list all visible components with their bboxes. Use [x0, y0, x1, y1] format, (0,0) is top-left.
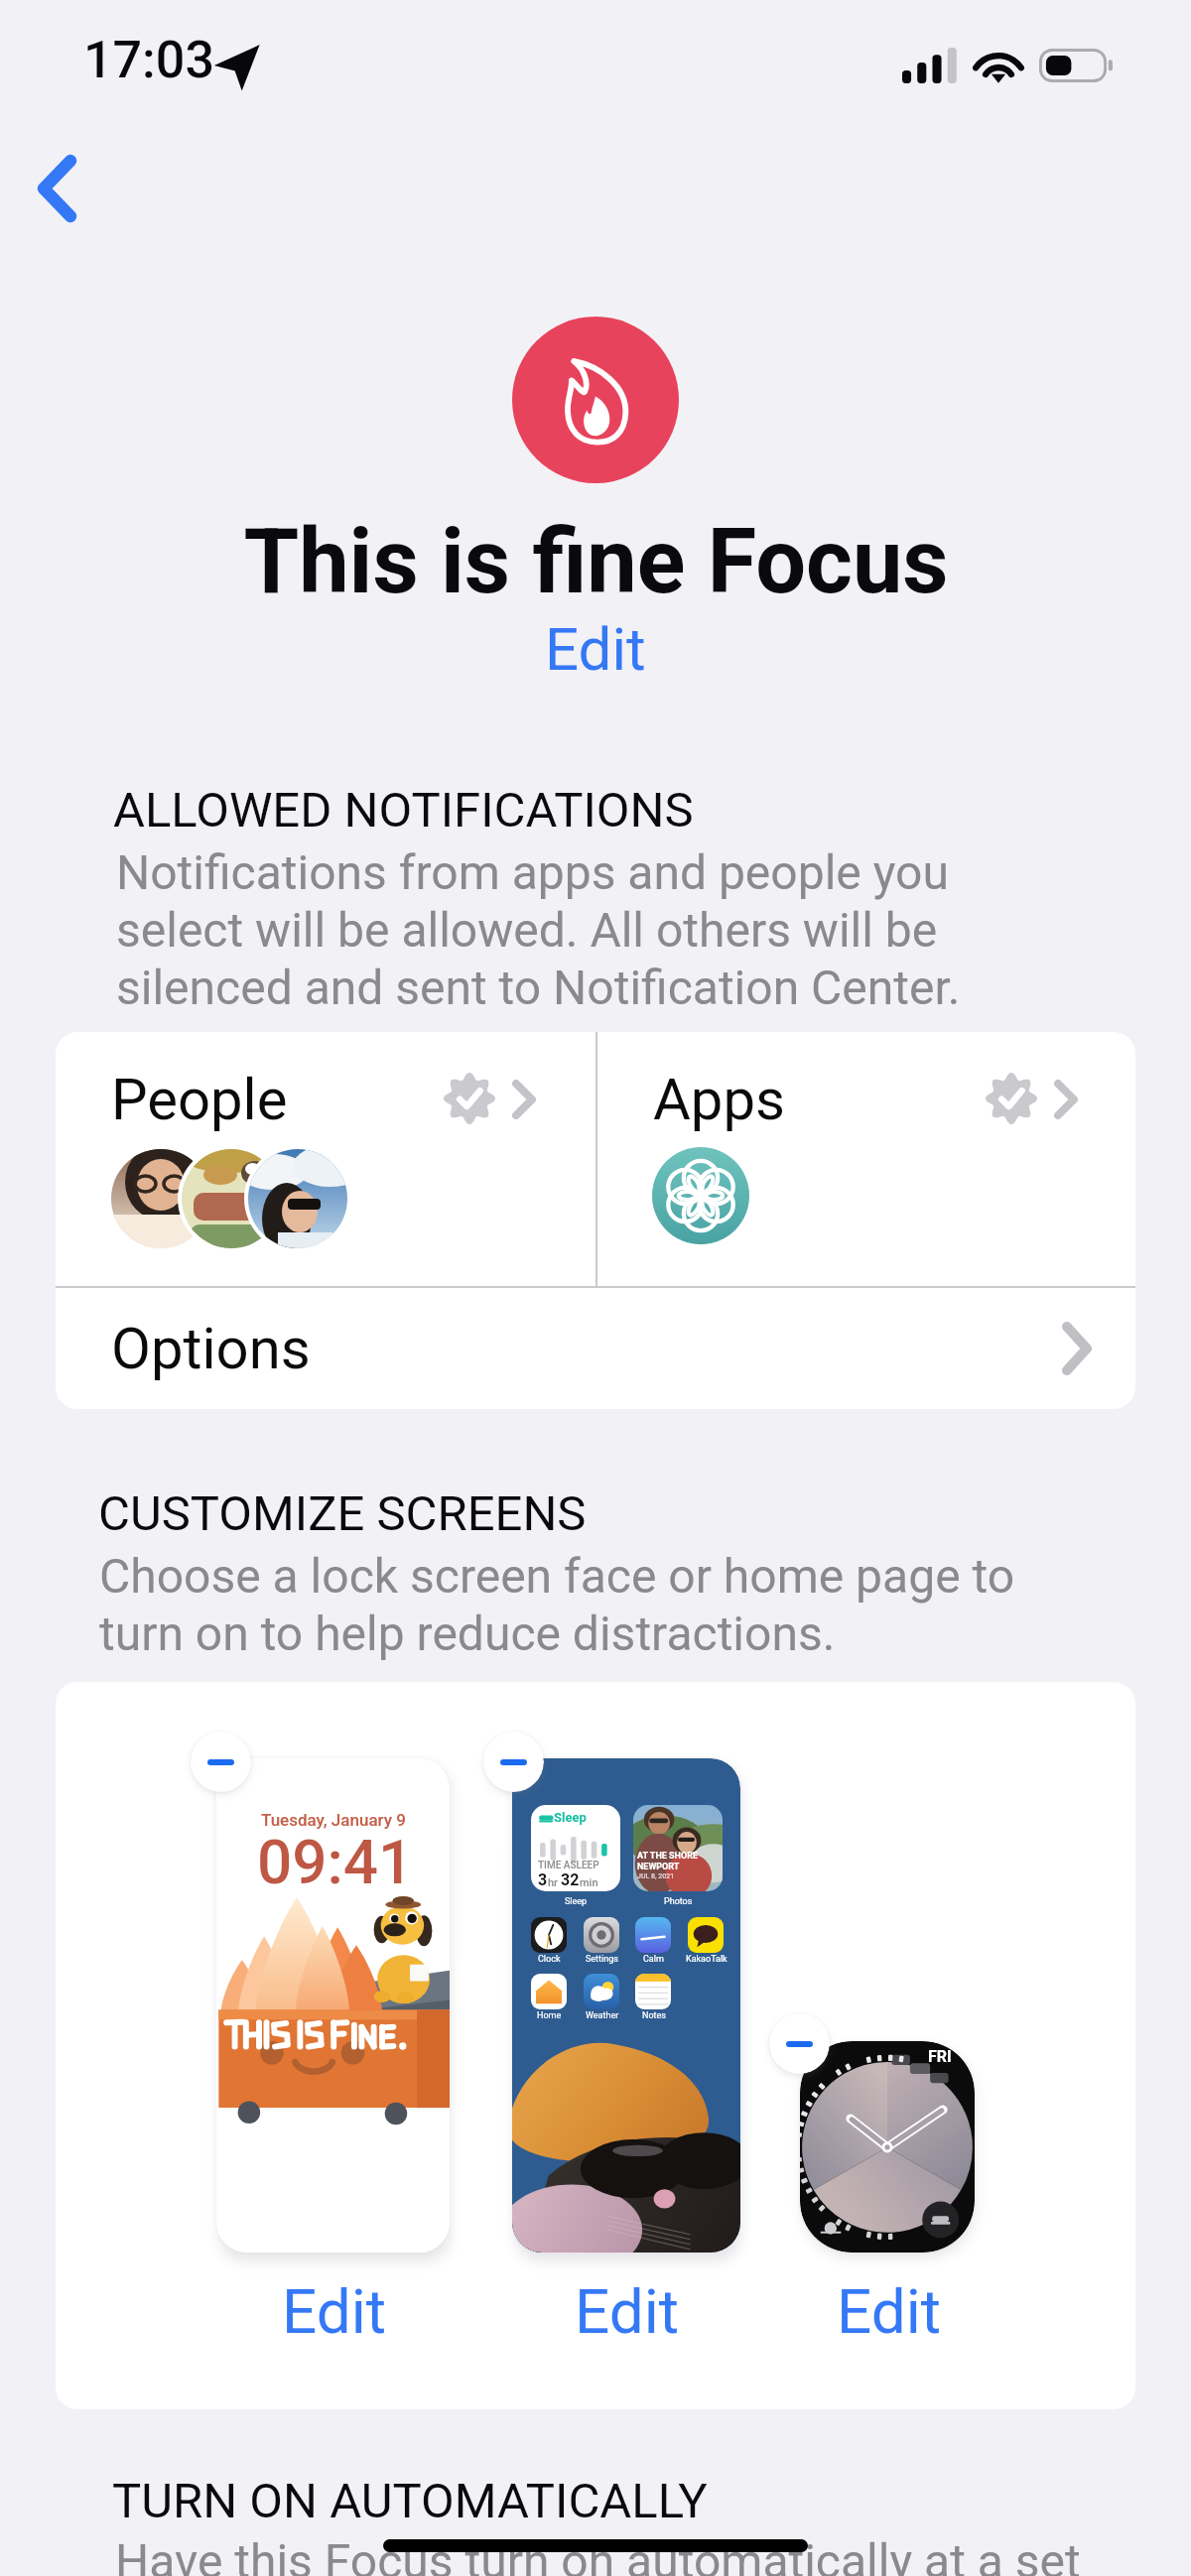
staticText: CUSTOMIZE SCREENS [98, 1485, 587, 1542]
staticText: Edit [837, 2275, 941, 2348]
staticText: Photos [664, 1896, 693, 1907]
button[interactable]: Edit [793, 2271, 984, 2351]
staticText: Edit [545, 614, 646, 684]
staticText: hr [548, 1876, 561, 1889]
button[interactable]: People [56, 1032, 595, 1286]
staticText: Apps [653, 1066, 785, 1133]
staticText: Edit [282, 2275, 386, 2348]
staticText: Notifications from apps and people you s… [116, 844, 968, 1016]
staticText: AT THE SHORE [637, 1851, 699, 1862]
staticText: TURN ON AUTOMATICALLY [112, 2473, 708, 2529]
staticText: 3 [538, 1870, 548, 1889]
button[interactable]: Back [7, 139, 106, 238]
staticText: 17:03 [83, 30, 214, 90]
staticText: FRI [928, 2047, 952, 2066]
staticText: KakaoTalk [686, 1954, 728, 1965]
staticText: This is fine Focus [243, 510, 949, 614]
button[interactable]: Options [56, 1288, 1135, 1409]
button[interactable]: Edit [515, 606, 676, 692]
staticText: Notes [642, 2010, 666, 2021]
staticText: Weather [586, 2010, 619, 2021]
staticText: 09:41 [257, 1826, 414, 1898]
staticText: Settings [586, 1954, 618, 1965]
staticText: JUL 8, 2021 [637, 1872, 675, 1880]
button[interactable]: Edit [238, 2271, 429, 2351]
button[interactable]: Watch face preview [800, 2041, 975, 2253]
button[interactable]: Remove [191, 1732, 251, 1792]
staticText: Clock [538, 1954, 561, 1965]
staticText: Have this Focus turn on automatically at… [115, 2533, 1118, 2576]
button[interactable]: Apps [597, 1032, 1135, 1286]
staticText: Choose a lock screen face or home page t… [99, 1548, 1032, 1662]
staticText: Tuesday, January 9 [261, 1810, 406, 1830]
staticText: People [111, 1066, 288, 1133]
staticText: Edit [575, 2275, 679, 2348]
button[interactable]: Remove [483, 1732, 544, 1792]
staticText: Sleep [565, 1896, 588, 1907]
staticText: min [580, 1876, 598, 1889]
staticText: TIME ASLEEP [538, 1860, 599, 1871]
staticText: NEWPORT [637, 1862, 680, 1872]
button[interactable]: Lock screen preview [216, 1758, 450, 2253]
staticText: Calm [643, 1954, 664, 1965]
staticText: 32 [561, 1870, 580, 1889]
button[interactable]: Home screen preview [512, 1758, 740, 2253]
staticText: ALLOWED NOTIFICATIONS [113, 782, 694, 838]
staticText: Options [111, 1315, 311, 1382]
staticText: Home [537, 2010, 562, 2021]
button[interactable]: Edit [531, 2271, 722, 2351]
staticText: Sleep [554, 1810, 587, 1825]
button[interactable]: Remove [769, 2013, 830, 2074]
